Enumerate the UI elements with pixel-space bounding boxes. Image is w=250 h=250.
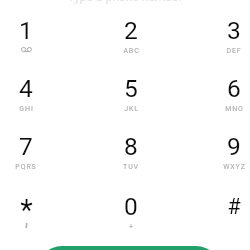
button[interactable]: 5 JKL xyxy=(85,58,177,114)
staticText: WXYZ xyxy=(223,163,246,171)
button[interactable]: 4 GHI xyxy=(0,58,72,114)
staticText: 5 xyxy=(124,74,138,100)
button[interactable]: star xyxy=(0,176,72,232)
staticText: * xyxy=(20,193,33,219)
staticText: Type a phone number xyxy=(67,0,183,4)
button[interactable]: 3 DEF xyxy=(188,0,250,56)
staticText: JKL xyxy=(124,105,139,113)
staticText: MNO xyxy=(225,105,244,113)
button[interactable]: 8 TUV xyxy=(85,116,177,172)
button[interactable]: 2 ABC xyxy=(85,0,177,56)
staticText: 7 xyxy=(19,132,33,158)
staticText: 4 xyxy=(19,74,33,100)
staticText: 3 xyxy=(227,16,241,42)
button[interactable]: 6 MNO xyxy=(188,58,250,114)
staticText: 0 xyxy=(124,192,138,218)
staticText: # xyxy=(227,194,241,219)
button[interactable]: Call xyxy=(37,246,221,250)
staticText: 8 xyxy=(124,132,138,158)
staticText: 2 xyxy=(124,16,138,42)
staticText: DEF xyxy=(226,47,242,55)
button[interactable]: 0 plus xyxy=(85,176,177,232)
staticText: GHI xyxy=(19,105,34,113)
staticText: 1 xyxy=(19,16,33,42)
staticText: TUV xyxy=(123,163,139,171)
staticText: 9 xyxy=(227,132,241,158)
button[interactable]: 9 WXYZ xyxy=(188,116,250,172)
button[interactable]: pound xyxy=(188,176,250,232)
button[interactable]: 1 voicemail xyxy=(0,0,72,56)
button[interactable]: 7 PQRS xyxy=(0,116,72,172)
staticText: PQRS xyxy=(15,163,37,171)
staticText: ABC xyxy=(123,47,140,55)
staticText: 6 xyxy=(227,74,241,100)
staticText: + xyxy=(129,223,134,231)
